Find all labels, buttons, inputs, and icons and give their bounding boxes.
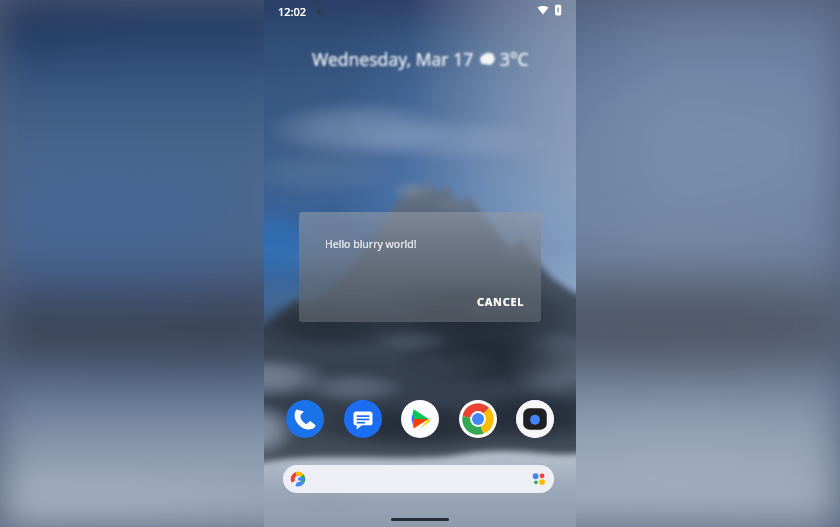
button[interactable]: CANCEL: [477, 294, 525, 309]
button[interactable]: Chrome: [459, 400, 497, 438]
button[interactable]: Messages: [344, 400, 382, 438]
staticText: CANCEL: [477, 294, 525, 309]
staticText: 12:02: [278, 4, 307, 19]
button[interactable]: Play Store: [401, 400, 439, 438]
button[interactable]: Phone: [286, 400, 324, 438]
button[interactable]: Wednesday, Mar 17: [312, 47, 529, 71]
button[interactable]: Camera: [516, 400, 554, 438]
button[interactable]: Search: [283, 465, 554, 493]
staticText: Hello blurry world!: [325, 237, 417, 251]
staticText: 3°C: [500, 47, 529, 71]
staticText: Wednesday, Mar 17: [312, 47, 474, 71]
other: Wi-Fi and battery status: [537, 4, 563, 16]
